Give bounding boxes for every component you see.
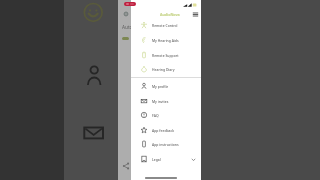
button[interactable]: App instructions <box>131 137 201 151</box>
button[interactable]: App feedback <box>131 123 201 137</box>
staticText: Hearing Diary <box>152 67 175 72</box>
button[interactable]: My profile <box>131 79 201 93</box>
staticText: FAQ <box>152 113 159 118</box>
staticText: Legal <box>152 157 161 162</box>
button[interactable]: FAQ <box>131 108 201 122</box>
button[interactable]: Legal <box>131 152 201 166</box>
staticText: Remote Control <box>152 23 178 28</box>
staticText: App instructions <box>152 142 179 147</box>
staticText: My profile <box>152 84 169 89</box>
button[interactable]: Hearing Diary <box>131 62 201 76</box>
staticText: My Hearing Aids <box>152 38 179 43</box>
staticText: Remote Support <box>152 53 179 58</box>
staticText: AudioNova <box>160 12 180 17</box>
button[interactable]: Menu <box>191 10 200 19</box>
button[interactable]: My invites <box>131 94 201 108</box>
staticText: My invites <box>152 99 169 104</box>
button[interactable]: Remote Support <box>131 48 201 62</box>
button[interactable]: Remote Control <box>131 18 201 32</box>
staticText: Auto <box>122 24 133 30</box>
other: Share <box>122 162 130 170</box>
staticText: App feedback <box>152 128 175 133</box>
button[interactable]: My Hearing Aids <box>131 33 201 47</box>
